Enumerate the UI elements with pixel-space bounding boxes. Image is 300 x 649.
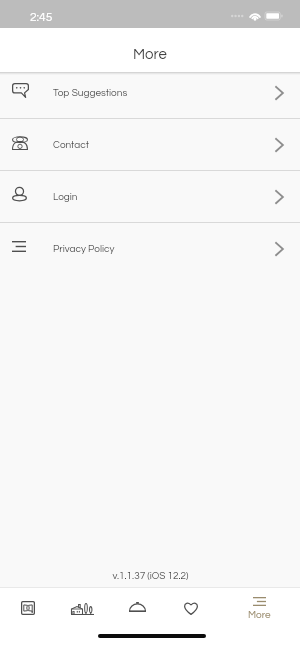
button[interactable]: Contact (0, 119, 300, 170)
staticText: Top Suggestions (53, 88, 128, 98)
button[interactable]: Dining (113, 588, 161, 625)
staticText: 2:45 (30, 11, 53, 23)
button[interactable]: Favourites (167, 588, 215, 625)
staticText: v.1.1.37 (iOS 12.2) (112, 571, 189, 581)
button[interactable]: Login (0, 171, 300, 222)
button[interactable]: Top Suggestions (0, 72, 300, 118)
button[interactable]: Guide (4, 588, 52, 625)
button[interactable]: More (232, 588, 286, 625)
staticText: Contact (53, 140, 89, 150)
staticText: Login (53, 192, 78, 202)
button[interactable]: Privacy Policy (0, 223, 300, 274)
staticText: More (133, 47, 167, 62)
button[interactable]: Resorts (58, 588, 106, 625)
staticText: More (248, 610, 271, 620)
staticText: Privacy Policy (53, 244, 115, 254)
